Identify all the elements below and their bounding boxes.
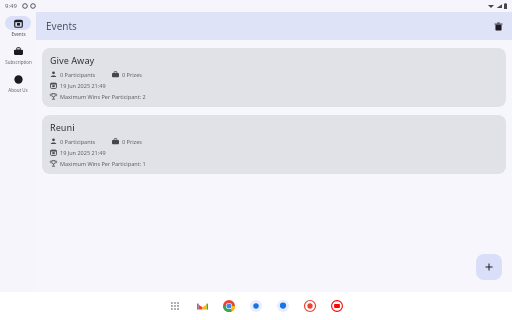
button[interactable]: Reuni <box>42 115 506 174</box>
button[interactable]: Subscription <box>0 43 36 66</box>
staticText: Reuni <box>50 121 75 133</box>
button[interactable]: YouTube <box>330 299 344 313</box>
button[interactable]: All apps <box>168 299 182 313</box>
staticText: Maximum Wins Per Participant: 1 <box>60 160 146 167</box>
staticText: 0 Prizes <box>122 71 142 78</box>
button[interactable]: Photos app <box>303 299 317 313</box>
staticText: Give Away <box>50 54 95 66</box>
button[interactable]: Gmail <box>195 299 209 313</box>
button[interactable]: About Us <box>0 71 36 94</box>
staticText: Subscription <box>5 59 32 65</box>
staticText: Maximum Wins Per Participant: 2 <box>60 93 146 100</box>
button[interactable]: Messages <box>276 299 290 313</box>
button[interactable]: Chrome <box>222 299 236 313</box>
staticText: 19 Jun 2025 21:49 <box>60 149 106 156</box>
button[interactable]: Delete <box>490 18 506 34</box>
staticText: 0 Prizes <box>122 138 142 145</box>
staticText: 9:49 <box>5 2 17 10</box>
staticText: About Us <box>8 87 28 93</box>
staticText: 0 Participants <box>60 138 96 145</box>
staticText: 19 Jun 2025 21:49 <box>60 82 106 89</box>
button[interactable]: Events <box>0 15 36 38</box>
button[interactable]: Give Away <box>42 48 506 107</box>
staticText: 0 Participants <box>60 71 96 78</box>
staticText: Events <box>46 19 77 33</box>
button[interactable]: Add event <box>476 254 502 280</box>
staticText: Events <box>11 31 26 37</box>
button[interactable]: Phone <box>249 299 263 313</box>
